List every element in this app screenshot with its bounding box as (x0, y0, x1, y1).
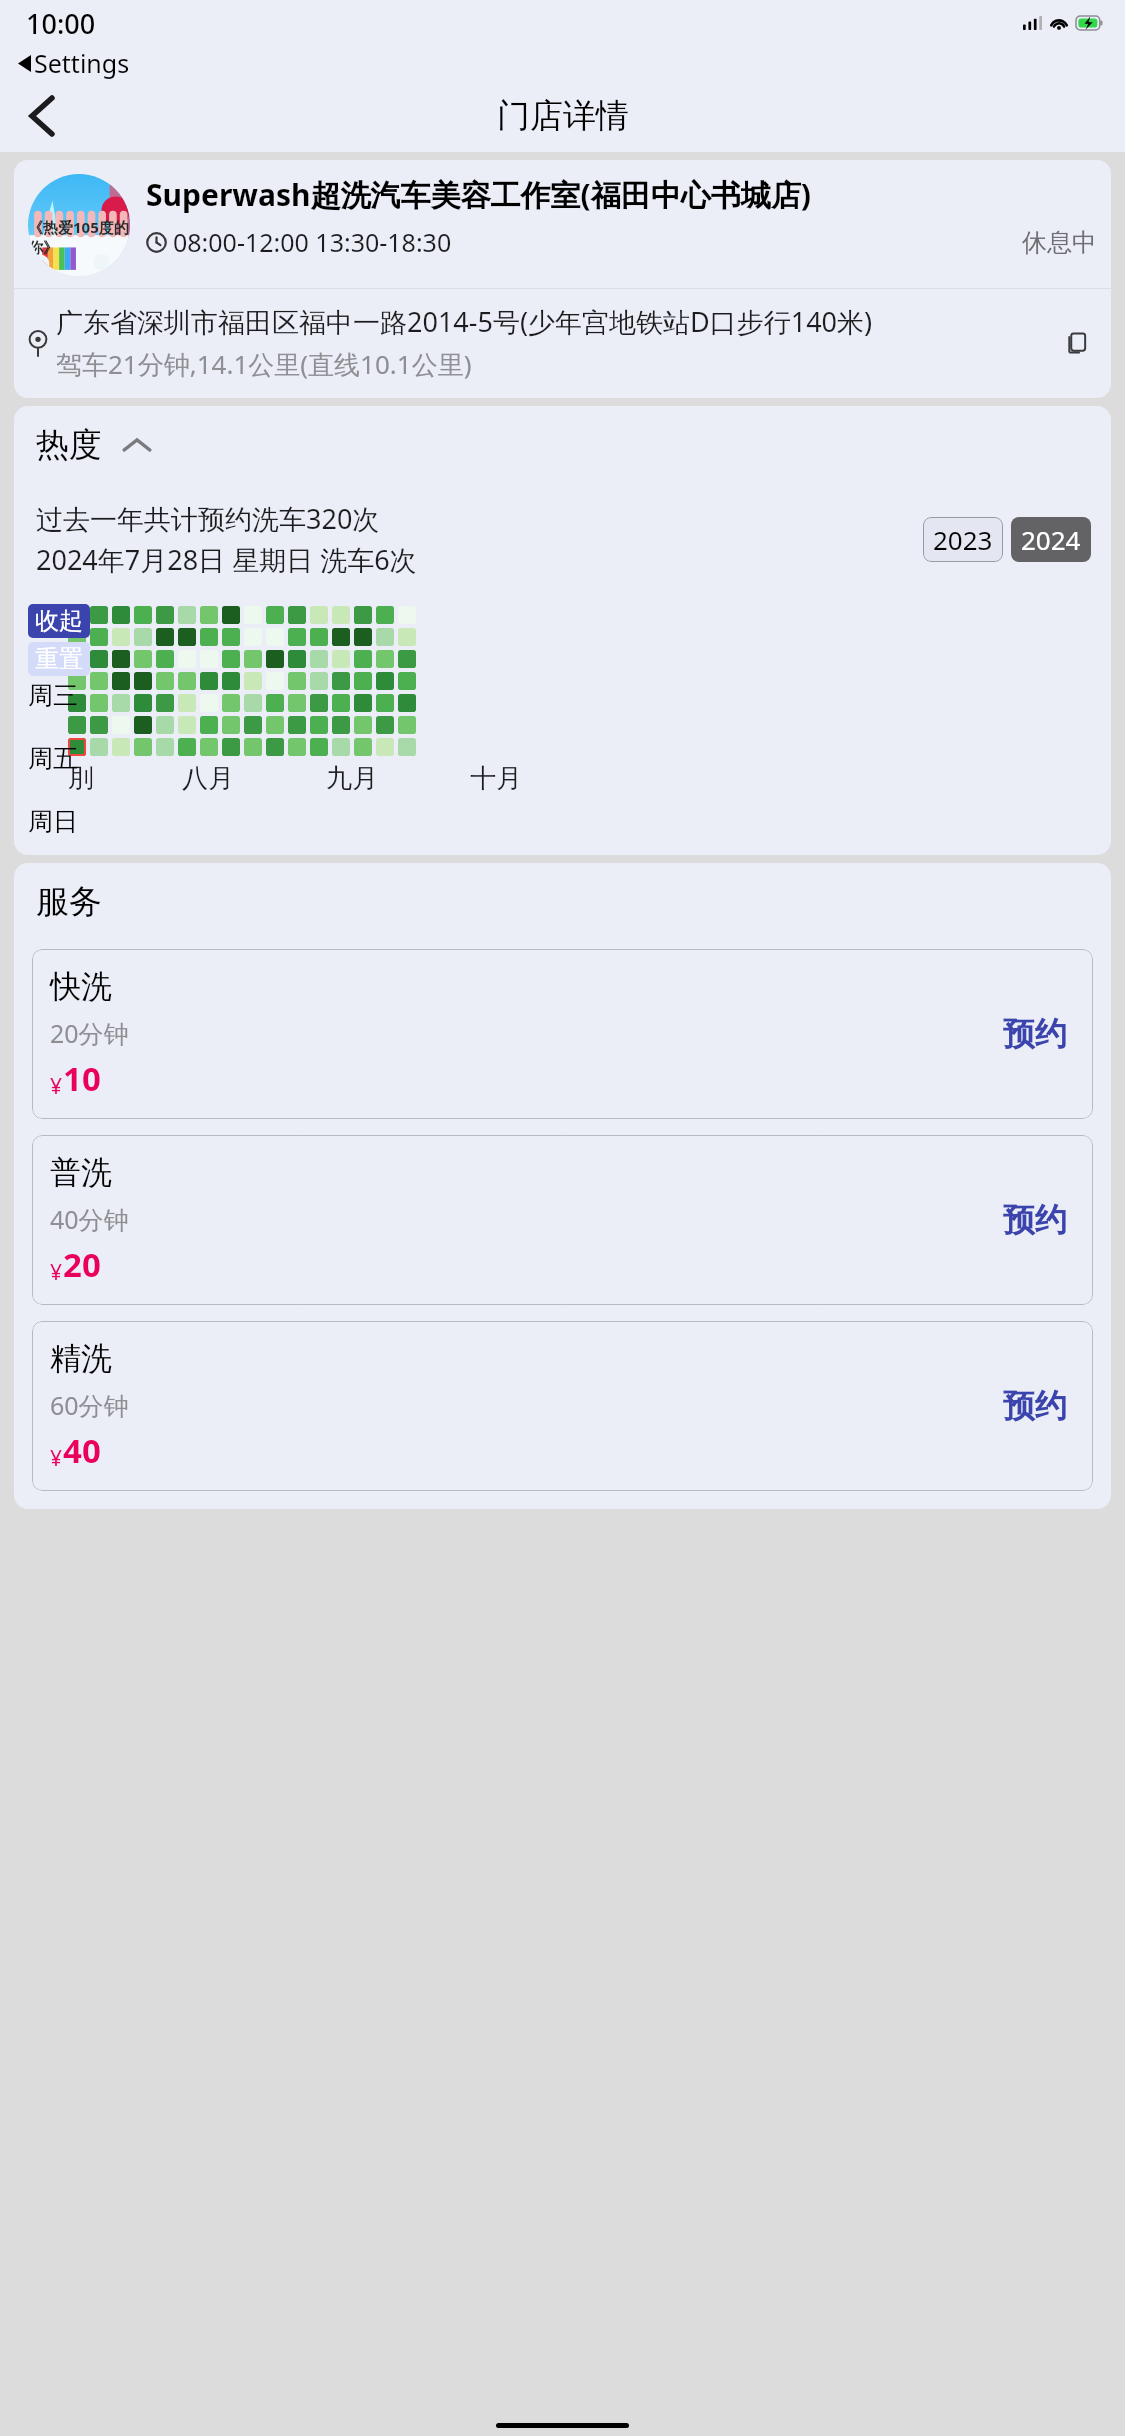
button[interactable] (288, 606, 306, 624)
button[interactable] (134, 672, 152, 690)
button[interactable] (244, 694, 262, 712)
button[interactable] (200, 672, 218, 690)
button[interactable] (68, 672, 86, 690)
button[interactable] (90, 738, 108, 756)
button[interactable] (134, 628, 152, 646)
button[interactable] (398, 738, 416, 756)
button[interactable] (178, 672, 196, 690)
button[interactable]: 预约 (995, 1006, 1075, 1062)
button[interactable] (178, 694, 196, 712)
button[interactable]: 快洗 (32, 949, 1093, 1119)
button[interactable] (90, 716, 108, 734)
button[interactable] (354, 628, 372, 646)
button[interactable] (288, 628, 306, 646)
button[interactable] (222, 650, 240, 668)
button[interactable] (134, 606, 152, 624)
button[interactable] (156, 738, 174, 756)
button[interactable] (310, 672, 328, 690)
button[interactable] (156, 716, 174, 734)
button[interactable] (200, 716, 218, 734)
button[interactable] (134, 650, 152, 668)
button[interactable] (68, 650, 86, 668)
button[interactable] (332, 628, 350, 646)
button[interactable] (68, 694, 86, 712)
button[interactable]: Back to Settings (18, 46, 1125, 80)
button[interactable] (156, 650, 174, 668)
button[interactable] (332, 716, 350, 734)
button[interactable] (376, 738, 394, 756)
button[interactable]: Back (14, 88, 70, 144)
button[interactable] (376, 672, 394, 690)
button[interactable] (222, 716, 240, 734)
button[interactable] (310, 694, 328, 712)
button[interactable]: 普洗 (32, 1135, 1093, 1305)
button[interactable] (398, 650, 416, 668)
button[interactable] (266, 606, 284, 624)
button[interactable] (90, 606, 108, 624)
button[interactable] (178, 606, 196, 624)
button[interactable] (310, 738, 328, 756)
button[interactable] (222, 694, 240, 712)
button[interactable] (266, 650, 284, 668)
button[interactable]: 收起 (28, 604, 90, 638)
button[interactable] (90, 672, 108, 690)
button[interactable] (156, 606, 174, 624)
button[interactable] (310, 628, 328, 646)
button[interactable] (134, 738, 152, 756)
button[interactable] (332, 650, 350, 668)
button[interactable] (376, 606, 394, 624)
button[interactable] (376, 716, 394, 734)
button[interactable] (332, 672, 350, 690)
button[interactable] (288, 694, 306, 712)
button[interactable] (354, 650, 372, 668)
button[interactable] (112, 694, 130, 712)
button[interactable] (354, 694, 372, 712)
button[interactable] (222, 628, 240, 646)
button[interactable] (288, 738, 306, 756)
button[interactable] (200, 606, 218, 624)
button[interactable] (376, 628, 394, 646)
button[interactable]: 2023 (923, 517, 1003, 562)
button[interactable] (178, 738, 196, 756)
button[interactable] (332, 738, 350, 756)
button[interactable] (398, 716, 416, 734)
button[interactable] (68, 716, 86, 734)
button[interactable] (310, 606, 328, 624)
button[interactable] (200, 628, 218, 646)
button[interactable] (112, 738, 130, 756)
button[interactable] (266, 738, 284, 756)
button[interactable] (266, 716, 284, 734)
button[interactable]: 预约 (995, 1378, 1075, 1434)
button[interactable] (310, 650, 328, 668)
button[interactable] (90, 650, 108, 668)
button[interactable]: 广东省深圳市福田区福中一路2014-5号(少年宫地铁站D口步行140米) (14, 289, 1111, 398)
button[interactable] (112, 672, 130, 690)
button[interactable] (244, 650, 262, 668)
button[interactable]: 热度 (36, 424, 150, 466)
button[interactable]: 预约 (995, 1192, 1075, 1248)
button[interactable] (222, 738, 240, 756)
button[interactable] (112, 650, 130, 668)
button[interactable] (332, 694, 350, 712)
button[interactable]: 2024 (1011, 517, 1091, 562)
button[interactable] (288, 650, 306, 668)
button[interactable] (156, 628, 174, 646)
button[interactable] (244, 738, 262, 756)
button[interactable] (178, 716, 196, 734)
button[interactable] (68, 606, 86, 624)
button[interactable] (90, 694, 108, 712)
button[interactable] (134, 716, 152, 734)
button[interactable] (354, 738, 372, 756)
button[interactable]: Store photo (28, 174, 130, 276)
button[interactable] (156, 672, 174, 690)
button[interactable] (354, 716, 372, 734)
button[interactable] (332, 606, 350, 624)
button[interactable] (90, 628, 108, 646)
button[interactable] (244, 672, 262, 690)
button[interactable]: Copy address (1057, 323, 1097, 363)
